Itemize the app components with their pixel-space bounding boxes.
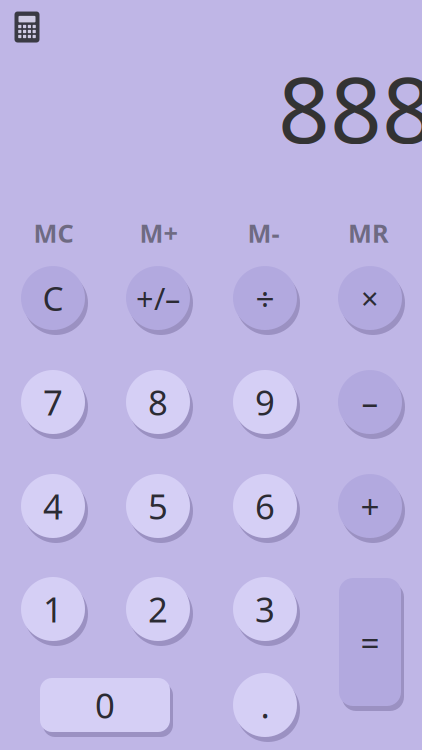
button[interactable]: M- <box>223 217 303 249</box>
staticText: 9 <box>255 379 275 425</box>
button[interactable]: 0 <box>35 672 175 738</box>
button[interactable]: 9 <box>228 364 302 440</box>
staticText: 4 <box>43 483 63 529</box>
staticText: 6 <box>255 483 275 529</box>
staticText: = <box>360 620 379 664</box>
staticText: – <box>361 380 378 424</box>
staticText: 2 <box>148 586 168 632</box>
staticText: 0 <box>95 682 115 728</box>
staticText: 5 <box>148 483 168 529</box>
button[interactable]: C <box>16 260 90 336</box>
button[interactable]: 2 <box>121 571 195 647</box>
button[interactable]: M+ <box>118 217 198 249</box>
staticText: ÷ <box>255 276 274 320</box>
button[interactable]: 4 <box>16 468 90 544</box>
staticText: +/– <box>136 278 180 318</box>
button[interactable]: +/– <box>121 260 195 336</box>
button[interactable]: 5 <box>121 468 195 544</box>
staticText: M+ <box>139 216 177 250</box>
staticText: MC <box>33 216 73 250</box>
button[interactable]: Calculator <box>10 7 44 47</box>
button[interactable]: 3 <box>228 571 302 647</box>
button[interactable]: 6 <box>228 468 302 544</box>
button[interactable]: 8 <box>121 364 195 440</box>
button[interactable]: . <box>228 667 302 743</box>
staticText: C <box>42 276 63 320</box>
staticText: M- <box>247 216 279 250</box>
button[interactable]: – <box>333 364 407 440</box>
button[interactable]: MR <box>328 217 408 249</box>
staticText: 1 <box>43 586 63 632</box>
button[interactable]: + <box>333 468 407 544</box>
staticText: 7 <box>43 379 63 425</box>
staticText: × <box>361 278 379 318</box>
button[interactable]: 7 <box>16 364 90 440</box>
staticText: 3 <box>255 586 275 632</box>
button[interactable]: × <box>333 260 407 336</box>
button[interactable]: = <box>334 572 406 712</box>
staticText: MR <box>348 216 389 250</box>
staticText: 8 <box>148 379 168 425</box>
button[interactable]: 1 <box>16 571 90 647</box>
staticText: . <box>260 682 269 728</box>
staticText: 888 <box>278 48 422 168</box>
button[interactable]: MC <box>13 217 93 249</box>
staticText: + <box>360 484 379 528</box>
button[interactable]: ÷ <box>228 260 302 336</box>
